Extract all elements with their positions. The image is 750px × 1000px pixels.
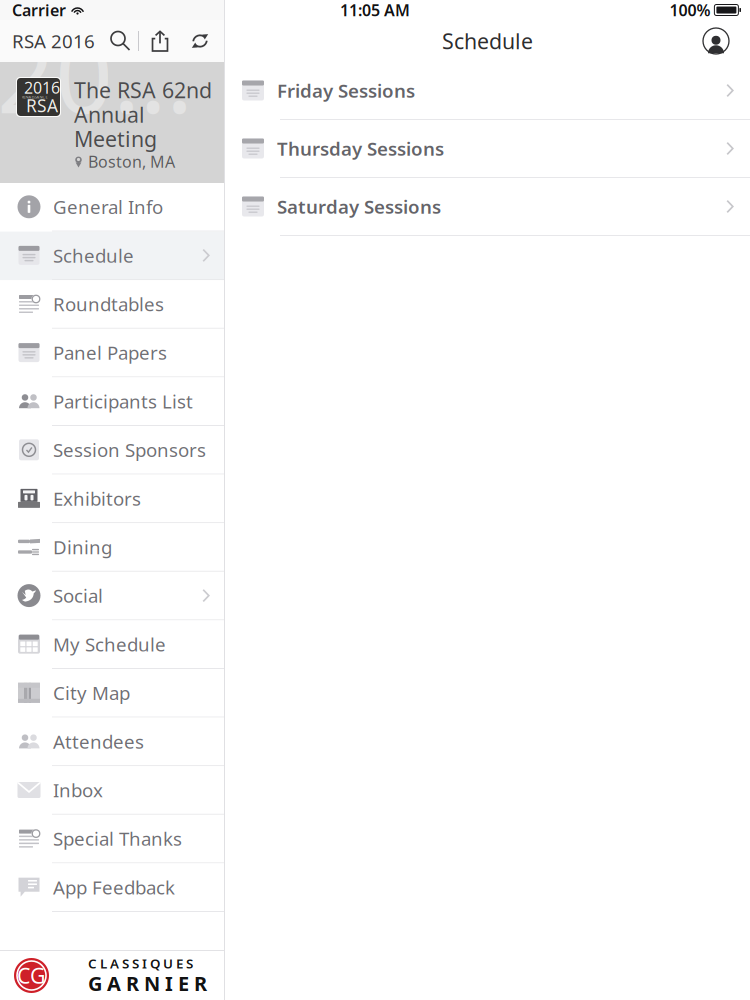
staticText: Meeting <box>74 124 157 153</box>
button[interactable]: City Map <box>0 669 224 718</box>
staticText: Schedule <box>53 243 134 268</box>
staticText: CG <box>17 961 46 990</box>
staticText: Social <box>53 583 103 608</box>
staticText: C L A S S I Q U E S <box>88 954 193 972</box>
button[interactable]: Refresh <box>181 24 219 58</box>
button[interactable]: Thursday Sessions <box>225 120 750 178</box>
button[interactable]: Participants List <box>0 377 224 426</box>
button[interactable]: Special Thanks <box>0 815 224 863</box>
staticText: Panel Papers <box>53 340 167 365</box>
staticText: RENAISSANCE <box>21 94 47 100</box>
staticText: Participants List <box>53 389 193 414</box>
button[interactable]: Account <box>695 20 737 62</box>
button[interactable]: Exhibitors <box>0 475 224 523</box>
button[interactable]: General Info <box>0 183 224 232</box>
button[interactable]: App Feedback <box>0 863 224 912</box>
staticText: Exhibitors <box>53 486 141 511</box>
button[interactable]: My Schedule <box>0 620 224 669</box>
staticText: BC <box>0 56 72 248</box>
staticText: Boston, MA <box>88 151 175 172</box>
button[interactable]: Panel Papers <box>0 329 224 377</box>
staticText: G A R N I E R <box>88 970 207 997</box>
staticText: 2016 <box>24 77 60 98</box>
button[interactable]: Dining <box>0 523 224 572</box>
staticText: 2016 <box>0 7 227 141</box>
button[interactable]: Attendees <box>0 718 224 766</box>
staticText: RSA <box>26 94 58 117</box>
button[interactable]: Friday Sessions <box>225 62 750 120</box>
staticText: RSA <box>70 40 260 264</box>
staticText: Attendees <box>53 729 144 754</box>
staticText: Saturday Sessions <box>277 194 441 219</box>
button[interactable]: Roundtables <box>0 280 224 329</box>
staticText: Friday Sessions <box>277 78 415 103</box>
button[interactable]: Saturday Sessions <box>225 178 750 236</box>
staticText: Session Sponsors <box>53 437 206 462</box>
button[interactable]: Social <box>0 572 224 620</box>
staticText: RSA 2016 <box>12 29 95 53</box>
button[interactable]: Schedule <box>0 232 224 280</box>
staticText: Roundtables <box>53 292 164 316</box>
staticText: General Info <box>53 194 163 219</box>
staticText: My Schedule <box>53 632 166 657</box>
staticText: 11:05 AM <box>340 0 410 21</box>
staticText: City Map <box>53 680 130 705</box>
button[interactable]: Session Sponsors <box>0 426 224 475</box>
staticText: Dining <box>53 535 112 559</box>
staticText: Annual <box>74 100 145 128</box>
staticText: 100% <box>669 0 710 21</box>
staticText: App Feedback <box>53 875 175 900</box>
button[interactable]: Search <box>103 24 138 58</box>
staticText: Special Thanks <box>53 826 182 851</box>
button[interactable]: Inbox <box>0 766 224 815</box>
staticText: Thursday Sessions <box>277 136 444 161</box>
staticText: The RSA 62nd <box>74 76 212 104</box>
staticText: Carrier <box>12 0 66 21</box>
staticText: Inbox <box>53 778 103 802</box>
staticText: Schedule <box>442 27 533 55</box>
button[interactable]: Share <box>139 24 181 58</box>
